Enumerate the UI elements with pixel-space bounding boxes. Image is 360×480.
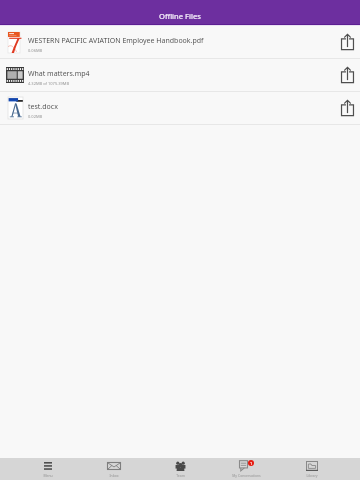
staticText: Library <box>306 473 318 478</box>
staticText: Inbox <box>109 473 119 478</box>
staticText: What matters.mp4 <box>28 69 90 79</box>
staticText: Team <box>176 473 185 478</box>
button[interactable]: Share <box>334 59 360 91</box>
staticText: 1 <box>250 461 253 466</box>
button[interactable]: Menu <box>15 458 81 480</box>
button[interactable]: WESTERN PACIFIC AVIATION Employee Handbo… <box>0 26 360 58</box>
button[interactable]: Inbox <box>81 458 147 480</box>
staticText: My Conversations <box>232 473 261 478</box>
staticText: test.docx <box>28 102 58 112</box>
staticText: WESTERN PACIFIC AVIATION Employee Handbo… <box>28 36 204 46</box>
staticText: Offline Files <box>159 11 201 21</box>
staticText: Menu <box>43 473 53 478</box>
staticText: 0.02MB <box>28 114 43 119</box>
button[interactable]: What matters.mp4 <box>0 59 360 91</box>
button[interactable]: Share <box>334 92 360 124</box>
button[interactable]: Share <box>334 26 360 58</box>
button[interactable]: My Conversations <box>213 458 279 480</box>
button[interactable]: Team <box>147 458 213 480</box>
staticText: 0.06MB <box>28 48 43 53</box>
button[interactable]: test.docx <box>0 92 360 124</box>
button[interactable]: Library <box>279 458 345 480</box>
staticText: 4.32MB of 1075.39MB <box>28 81 70 86</box>
